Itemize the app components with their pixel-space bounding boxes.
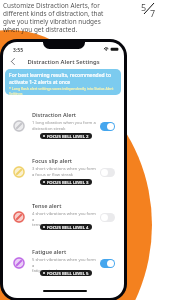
staticText: 1 long vibration when you form a distrac… — [32, 120, 98, 131]
button[interactable]: Toggle alert — [100, 259, 115, 268]
staticText: 3 short vibrations when you form a focus… — [32, 166, 98, 177]
staticText: FOCUS BELL LEVEL 4 — [47, 224, 89, 230]
button[interactable]: Focus slip alert — [3, 156, 124, 200]
button[interactable]: Distraction Alert — [3, 110, 124, 154]
button[interactable]: Toggle alert — [100, 168, 115, 177]
staticText: FOCUS BELL LEVEL 2 — [47, 133, 89, 139]
staticText: Tense alert — [32, 202, 62, 209]
staticText: 7 — [150, 7, 156, 19]
staticText: FOCUS BELL LEVEL 5 — [47, 270, 89, 276]
staticText: 5 — [141, 1, 147, 13]
staticText: 3:55 — [13, 47, 23, 54]
staticText: Distraction Alert Settings — [3, 58, 124, 66]
staticText: 4 short vibrations when you form a tense… — [32, 211, 98, 227]
button[interactable]: Tense alert — [3, 201, 124, 245]
staticText: Customize Distraction Alerts, for differ… — [3, 1, 104, 34]
button[interactable]: Toggle alert — [100, 122, 115, 131]
staticText: * Long flash alert settings saves indepe… — [9, 86, 118, 95]
button[interactable]: Fatigue alert — [3, 247, 124, 291]
staticText: Distraction Alert — [32, 111, 76, 118]
staticText: For best learning results, recommended t… — [9, 72, 117, 85]
button[interactable]: Back — [6, 55, 19, 68]
staticText: 5 short vibrations when you form a fatig… — [32, 257, 98, 273]
staticText: Fatigue alert — [32, 248, 67, 255]
button[interactable]: Toggle alert — [100, 213, 115, 222]
staticText: FOCUS BELL LEVEL 3 — [47, 179, 89, 185]
staticText: Focus slip alert — [32, 157, 73, 164]
